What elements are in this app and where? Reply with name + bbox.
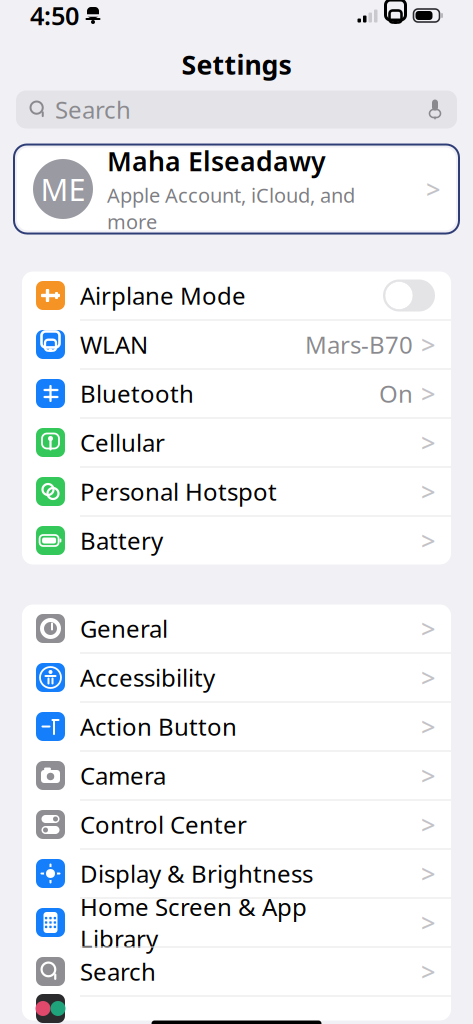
button[interactable]: Search: [22, 947, 451, 996]
button[interactable]: Action Button: [22, 702, 451, 751]
staticText: >: [421, 857, 435, 890]
staticText: Airplane Mode: [80, 280, 246, 311]
staticText: Mars-B70: [305, 329, 413, 360]
staticText: >: [426, 172, 440, 206]
staticText: Apple Account, iCloud, and more: [107, 182, 355, 235]
staticText: >: [421, 426, 435, 459]
button[interactable]: Home Screen & App Library: [22, 898, 451, 947]
staticText: >: [421, 808, 435, 841]
staticText: >: [421, 328, 435, 361]
staticText: >: [421, 906, 435, 939]
staticText: General: [80, 613, 168, 644]
staticText: Settings: [181, 47, 291, 82]
staticText: Home Screen & App Library: [80, 891, 307, 954]
button[interactable]: Search: [16, 90, 457, 128]
staticText: >: [421, 955, 435, 988]
staticText: Battery: [80, 525, 163, 556]
staticText: On: [379, 378, 413, 409]
button[interactable]: General: [22, 604, 451, 653]
staticText: Display & Brightness: [80, 858, 313, 889]
staticText: Bluetooth: [80, 378, 194, 409]
button[interactable]: Personal Hotspot: [22, 467, 451, 516]
staticText: Camera: [80, 760, 166, 791]
staticText: >: [421, 661, 435, 694]
staticText: 4:50: [30, 0, 79, 32]
staticText: >: [421, 759, 435, 792]
staticText: >: [421, 524, 435, 557]
button[interactable]: ME: [14, 144, 459, 233]
button[interactable]: WLAN: [22, 320, 451, 369]
staticText: Accessibility: [80, 662, 215, 693]
button[interactable]: Battery: [22, 516, 451, 564]
button[interactable]: Control Center: [22, 800, 451, 849]
button[interactable]: Cellular: [22, 418, 451, 467]
staticText: Search: [55, 94, 131, 125]
staticText: WLAN: [80, 329, 148, 360]
button[interactable]: Accessibility: [22, 653, 451, 702]
button[interactable]: Bluetooth: [22, 369, 451, 418]
staticText: Cellular: [80, 427, 165, 458]
staticText: >: [421, 612, 435, 645]
staticText: Search: [80, 956, 156, 987]
button[interactable]: Display & Brightness: [22, 849, 451, 898]
staticText: >: [421, 377, 435, 410]
staticText: Control Center: [80, 809, 247, 840]
staticText: Personal Hotspot: [80, 476, 277, 507]
staticText: >: [421, 710, 435, 743]
button[interactable]: Airplane Mode: [22, 271, 451, 320]
staticText: >: [421, 475, 435, 508]
staticText: ME: [40, 169, 85, 209]
staticText: Maha Elseadawy: [107, 143, 326, 179]
button[interactable]: Camera: [22, 751, 451, 800]
staticText: Action Button: [80, 711, 237, 742]
